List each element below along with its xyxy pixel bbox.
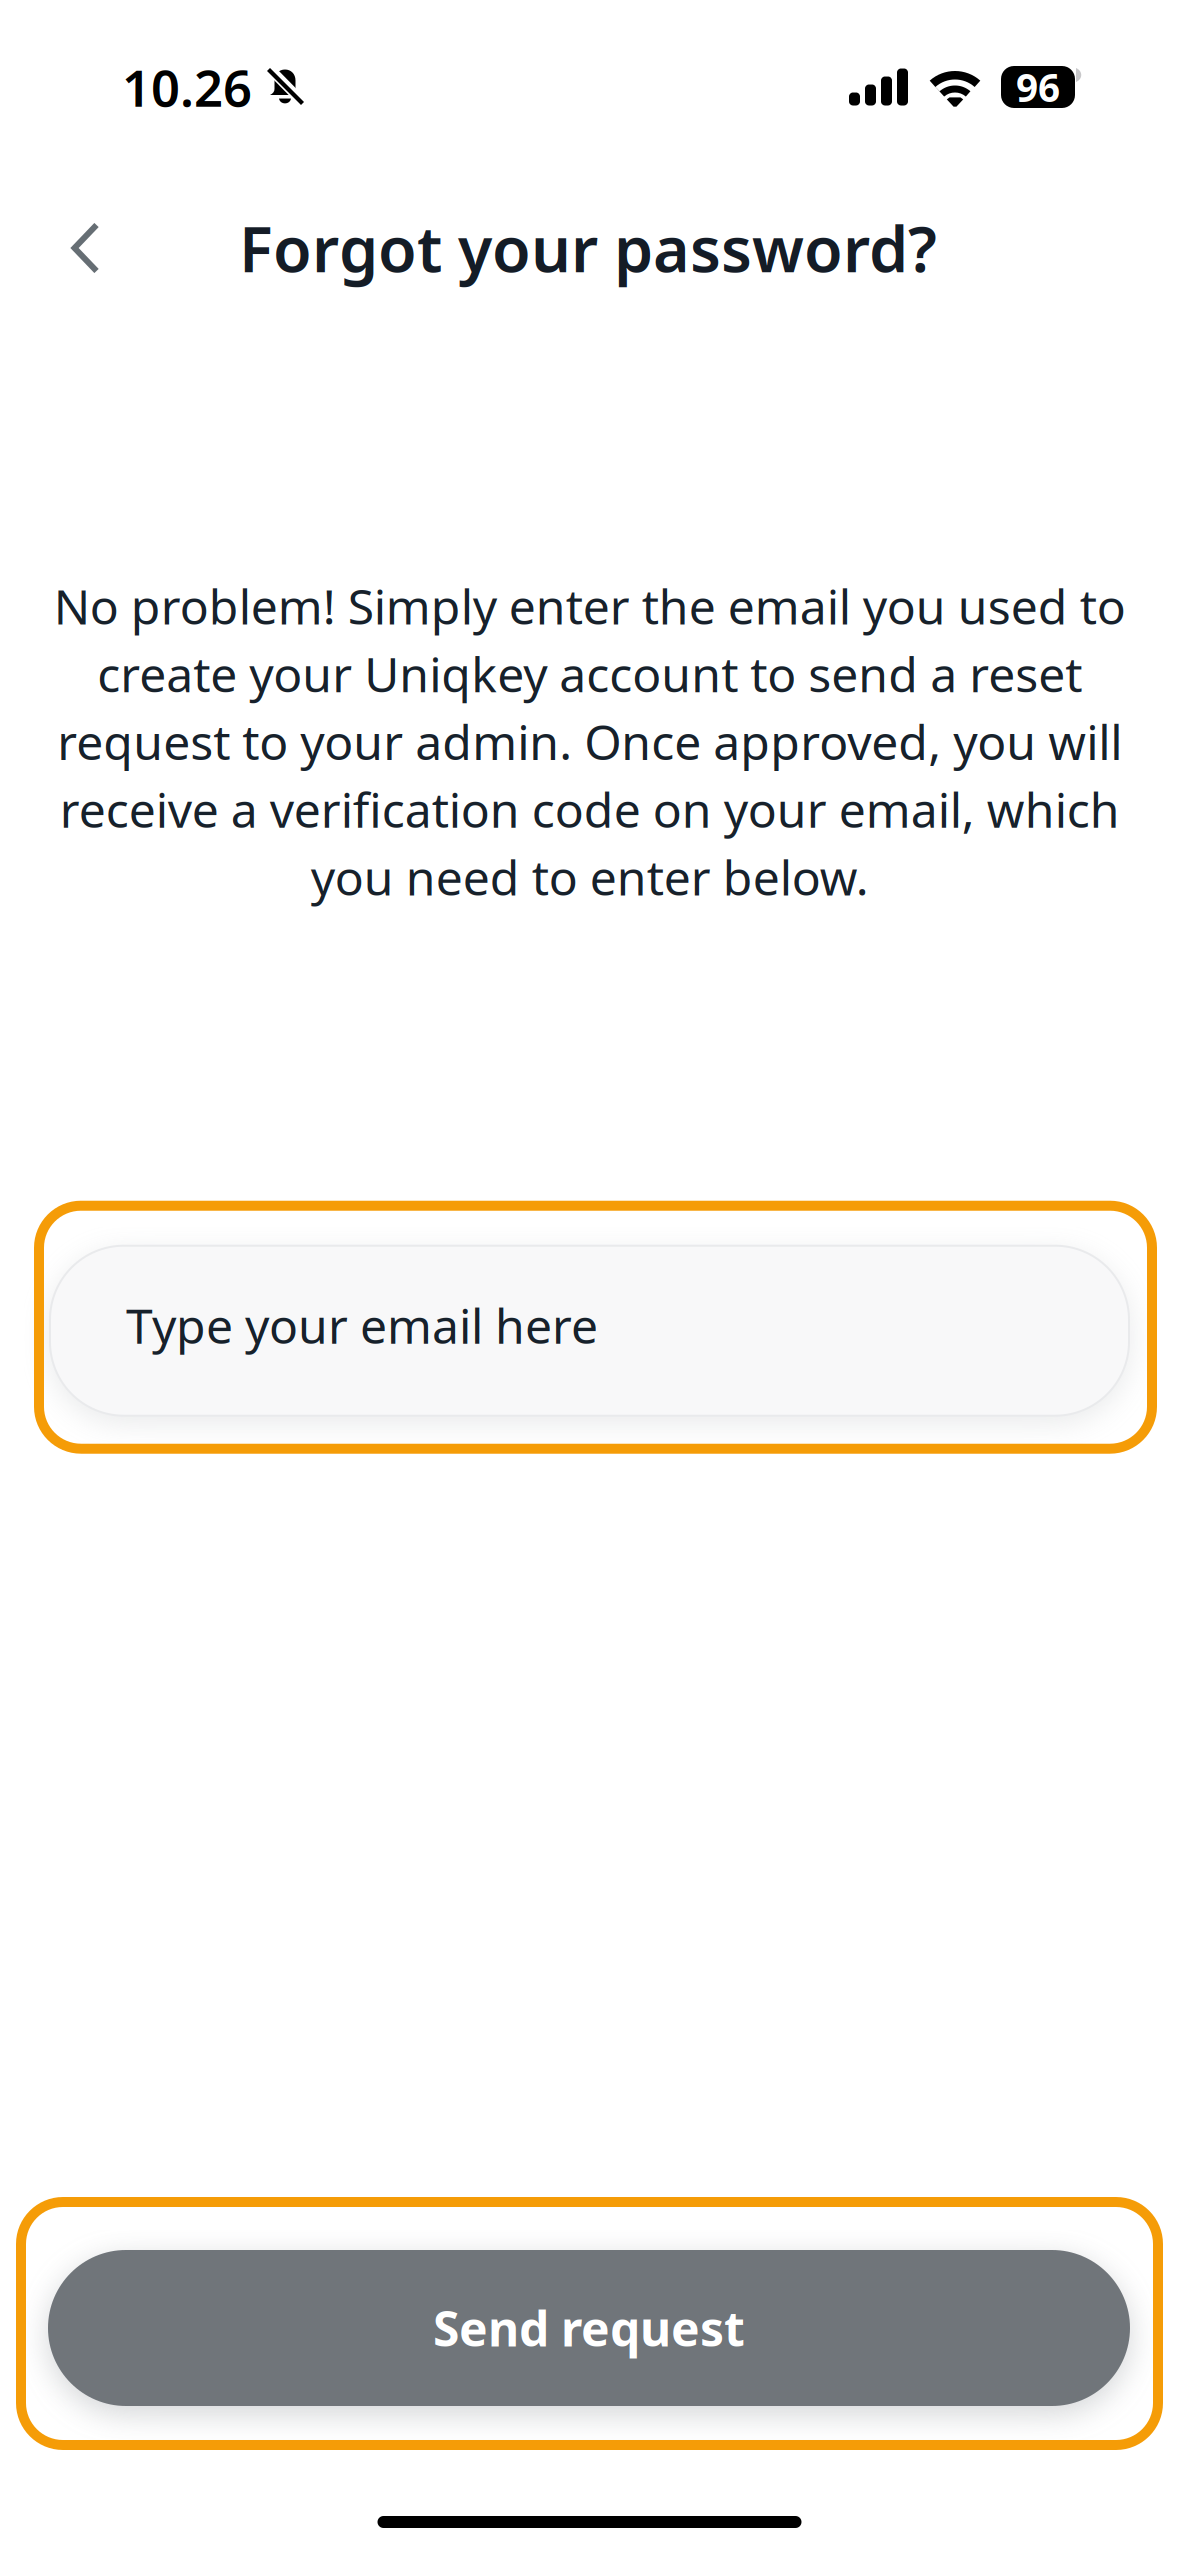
button[interactable]: Type your email here: [0, 1206, 1152, 1449]
staticText: Type your email here: [126, 1293, 598, 1357]
button[interactable]: Back: [0, 198, 190, 298]
button[interactable]: Send request: [0, 2202, 1158, 2445]
staticText: 96: [1016, 61, 1060, 113]
staticText: 10.26: [122, 53, 252, 121]
staticText: Send request: [433, 2296, 745, 2360]
staticText: Forgot your password?: [239, 206, 937, 290]
staticText: No problem! Simply enter the email you u…: [53, 574, 1125, 909]
